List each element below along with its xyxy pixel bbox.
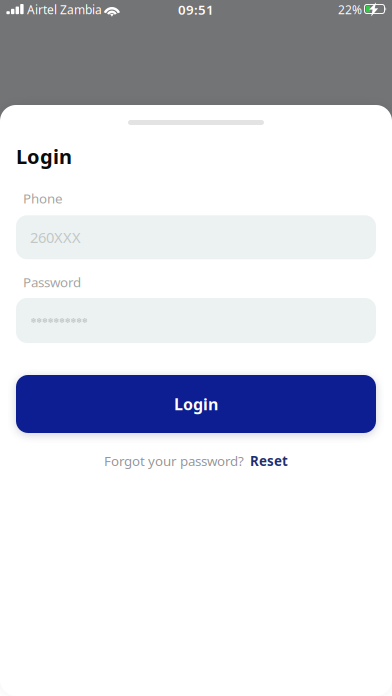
- button[interactable]: Reset: [244, 452, 288, 470]
- staticText: Airtel Zambia: [27, 1, 102, 17]
- staticText: Reset: [250, 452, 288, 470]
- button[interactable]: Login: [16, 375, 376, 433]
- staticText: Forgot your password?: [104, 452, 244, 470]
- staticText: Phone: [23, 190, 63, 207]
- staticText: Login: [16, 143, 72, 170]
- staticText: Password: [23, 273, 81, 291]
- staticText: 260XXX: [30, 227, 81, 247]
- staticText: 22%: [338, 1, 362, 17]
- staticText: Login: [174, 393, 218, 414]
- staticText: 09:51: [178, 1, 214, 18]
